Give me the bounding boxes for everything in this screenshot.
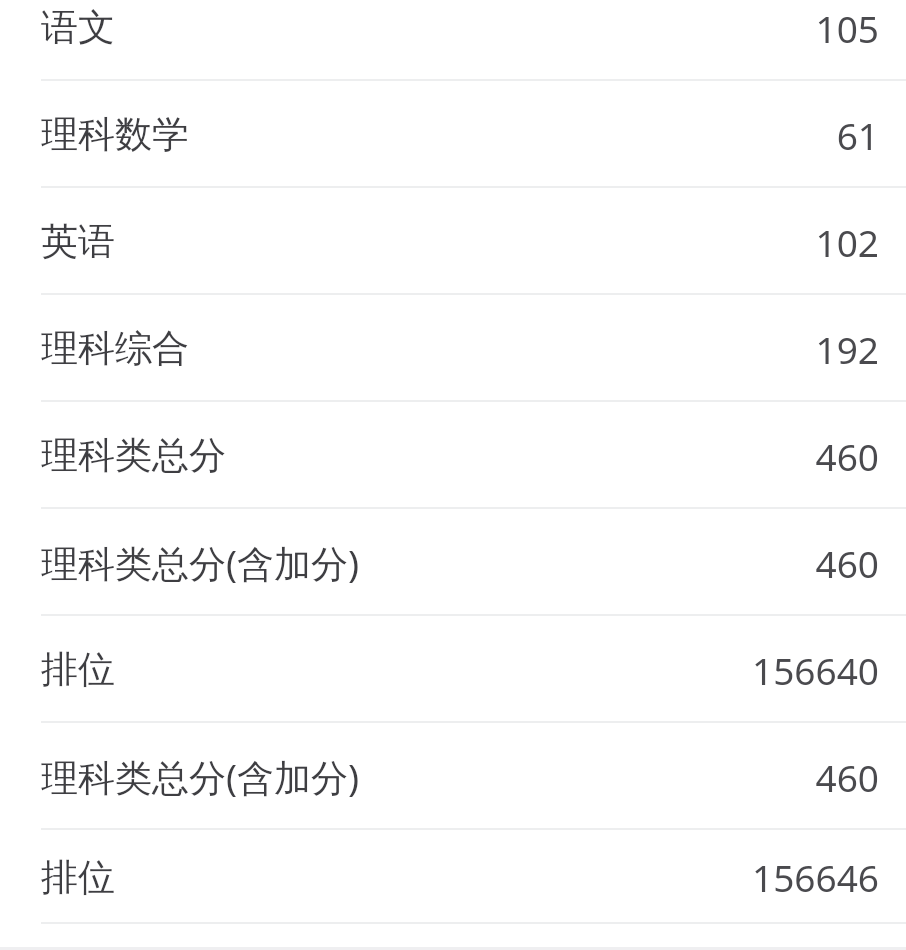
button[interactable]: 理科类总分(含加分) xyxy=(0,509,906,616)
staticText: 理科类总分 xyxy=(41,432,226,479)
staticText: 156640 xyxy=(752,645,879,695)
button[interactable]: 理科综合 xyxy=(0,295,906,402)
staticText: 理科类总分(含加分) xyxy=(41,751,360,802)
button[interactable]: 排位 xyxy=(0,616,906,723)
button[interactable]: 语文 xyxy=(0,0,906,81)
staticText: 排位 xyxy=(41,854,115,901)
staticText: 192 xyxy=(815,324,879,374)
button[interactable]: 排位 xyxy=(0,830,906,924)
staticText: 460 xyxy=(815,538,879,588)
button[interactable]: 理科类总分 xyxy=(0,402,906,509)
staticText: 156646 xyxy=(752,852,879,902)
staticText: 英语 xyxy=(41,218,115,265)
staticText: 460 xyxy=(815,752,879,802)
staticText: 105 xyxy=(815,3,879,53)
staticText: 排位 xyxy=(41,646,115,693)
button[interactable]: 理科数学 xyxy=(0,81,906,188)
staticText: 102 xyxy=(815,217,879,267)
staticText: 460 xyxy=(815,431,879,481)
staticText: 语文 xyxy=(41,4,115,51)
staticText: 理科类总分(含加分) xyxy=(41,537,360,588)
button[interactable]: 英语 xyxy=(0,188,906,295)
staticText: 理科综合 xyxy=(41,325,189,372)
button[interactable]: 理科类总分(含加分) xyxy=(0,723,906,830)
staticText: 理科数学 xyxy=(41,111,189,158)
staticText: 61 xyxy=(836,110,879,160)
